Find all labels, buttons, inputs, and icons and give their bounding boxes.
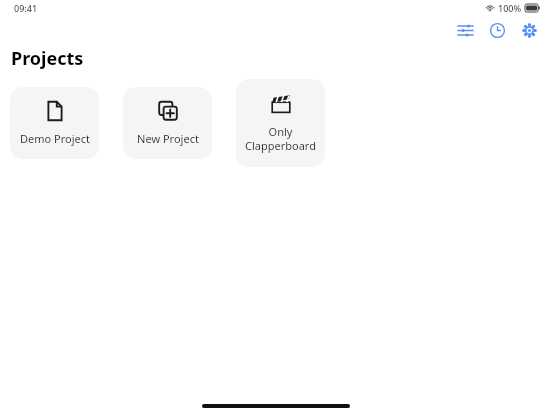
button[interactable]: Recent (486, 19, 508, 41)
button[interactable]: New Project (123, 87, 212, 159)
staticText: 100% (498, 2, 522, 14)
staticText: Demo Project (20, 131, 90, 146)
button[interactable]: Demo Project (10, 87, 99, 159)
staticText: Projects (11, 46, 84, 71)
button[interactable]: Filters (454, 19, 476, 41)
staticText: Only Clapperboard (245, 124, 316, 153)
staticText: 09:41 (14, 2, 38, 14)
staticText: New Project (137, 131, 199, 146)
button[interactable]: Only Clapperboard (236, 79, 325, 167)
button[interactable]: Settings (518, 19, 540, 41)
